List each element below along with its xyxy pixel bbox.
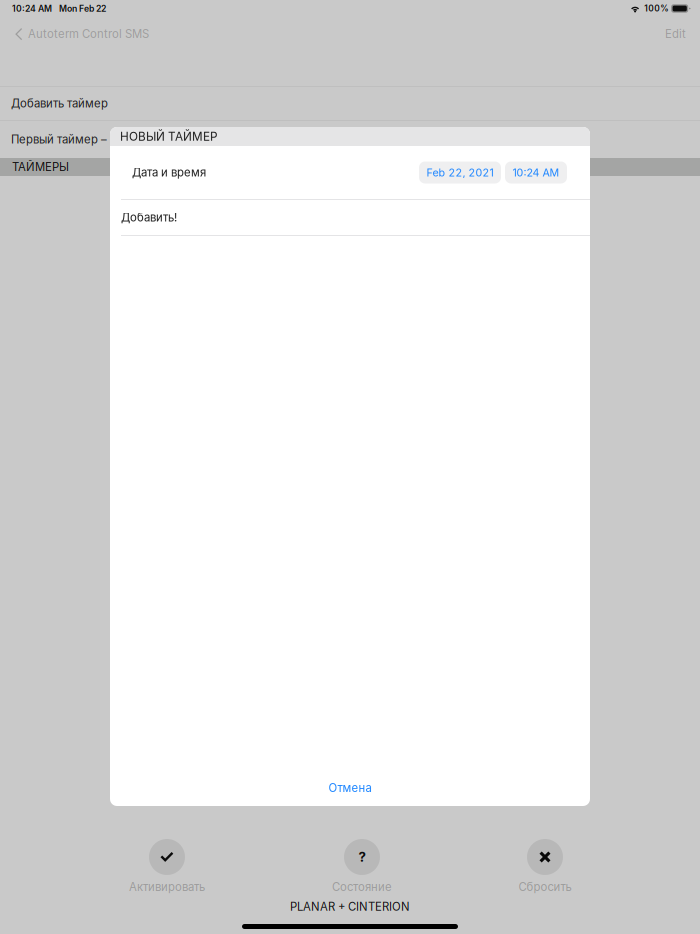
button[interactable]: Feb 22, 2021 — [419, 161, 501, 183]
button[interactable]: Добавить! — [110, 200, 590, 235]
button[interactable]: Первый таймер – понедельник, 07:00, +20 … — [0, 121, 700, 158]
staticText: 10:24 AM — [512, 166, 559, 179]
staticText: Добавить таймер — [11, 97, 108, 110]
button[interactable]: Отмена — [110, 758, 590, 806]
staticText: Сбросить — [518, 880, 571, 894]
staticText: Состояние — [332, 880, 392, 894]
staticText: Дата и время — [132, 166, 206, 179]
staticText: ? — [358, 849, 365, 865]
staticText: Mon Feb 22 — [59, 3, 106, 14]
staticText: Отмена — [328, 781, 371, 795]
button[interactable]: Активировать — [102, 839, 232, 894]
staticText: 100% — [644, 3, 668, 14]
staticText: PLANAR + CINTERION — [290, 900, 410, 913]
staticText: НОВЫЙ ТАЙМЕР — [120, 129, 217, 144]
staticText: Autoterm Control SMS — [28, 27, 149, 41]
staticText: Первый таймер – понедельник, 07:00, +20 … — [11, 133, 264, 146]
button[interactable]: Добавить таймер — [0, 87, 700, 120]
staticText: ТАЙМЕРЫ — [12, 160, 69, 174]
staticText: Feb 22, 2021 — [426, 166, 493, 179]
staticText: 10:24 AM — [12, 3, 52, 14]
button[interactable]: ? — [297, 839, 427, 894]
button[interactable]: 10:24 AM — [505, 161, 567, 183]
staticText: Активировать — [129, 880, 205, 894]
button[interactable]: Autoterm Control SMS — [0, 20, 149, 48]
button[interactable]: Edit — [665, 20, 700, 48]
button[interactable]: Сбросить — [480, 839, 610, 894]
staticText: Edit — [665, 27, 686, 41]
staticText: Добавить! — [121, 211, 177, 224]
